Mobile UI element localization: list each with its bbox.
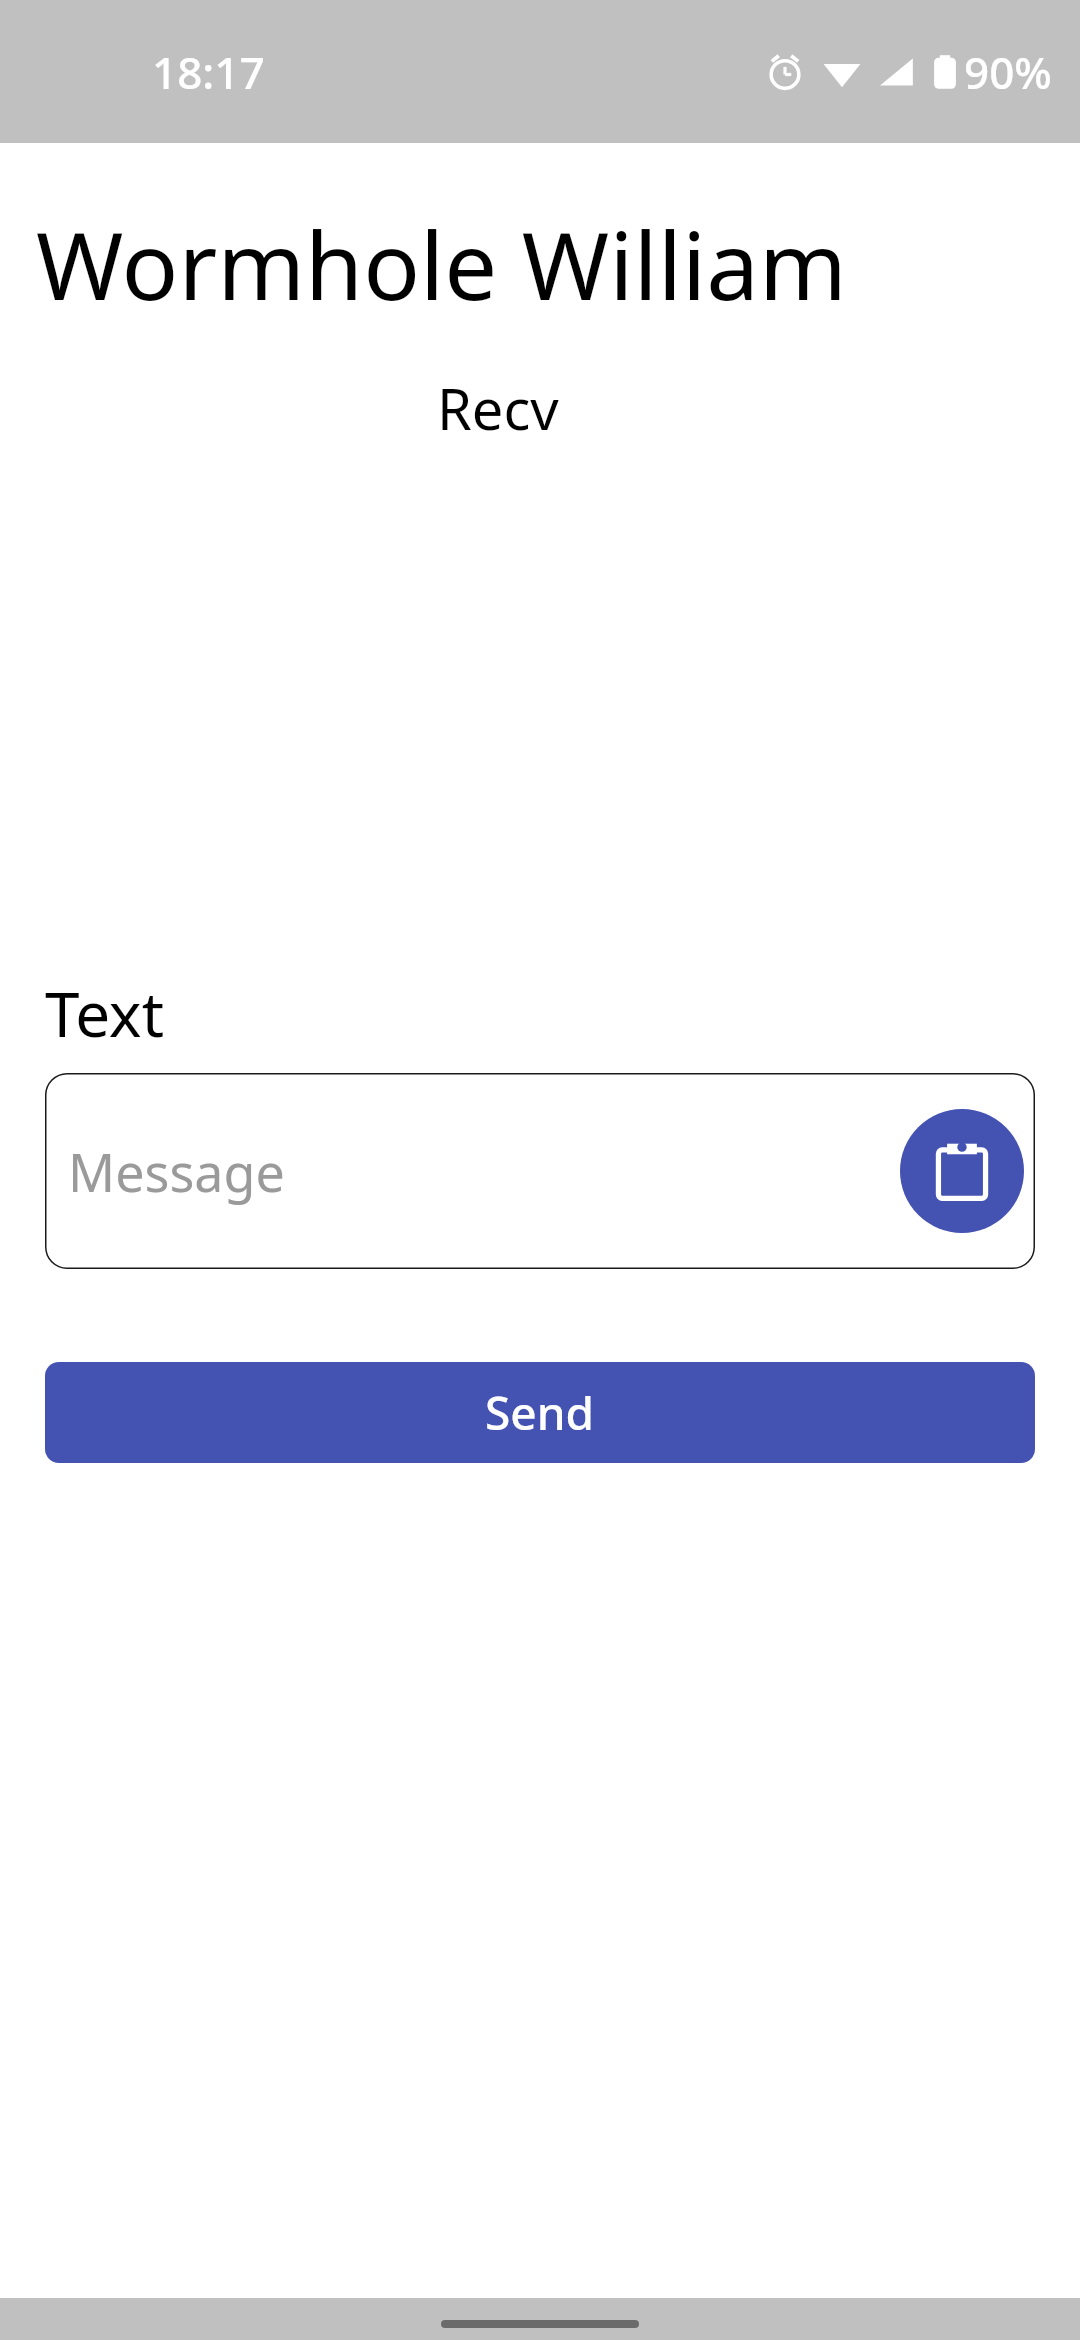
button[interactable]: Recv <box>0 370 1080 477</box>
staticText: 18:17 <box>152 42 265 102</box>
staticText: Text <box>45 971 165 1055</box>
staticText: 90% <box>964 42 1052 102</box>
staticText: Message <box>68 1136 285 1207</box>
staticText: Recv <box>437 370 559 446</box>
staticText: Send <box>485 1381 595 1444</box>
staticText: Wormhole William <box>36 200 847 328</box>
button[interactable]: Send <box>45 1362 1035 1463</box>
button[interactable]: Paste from clipboard <box>900 1109 1024 1233</box>
button[interactable]: Message <box>45 1073 1035 1269</box>
